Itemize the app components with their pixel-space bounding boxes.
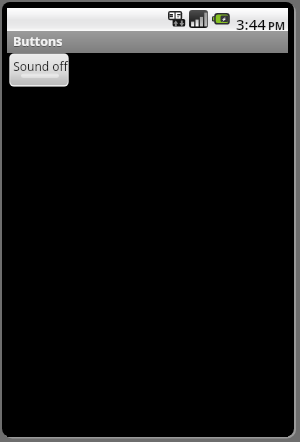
staticText: 3:44	[236, 14, 266, 34]
staticText: Buttons	[13, 34, 63, 51]
staticText: Buttons	[13, 33, 63, 50]
button[interactable]: Sound off	[9, 53, 69, 87]
staticText: Sound off	[13, 58, 68, 74]
staticText: PM	[268, 18, 286, 33]
